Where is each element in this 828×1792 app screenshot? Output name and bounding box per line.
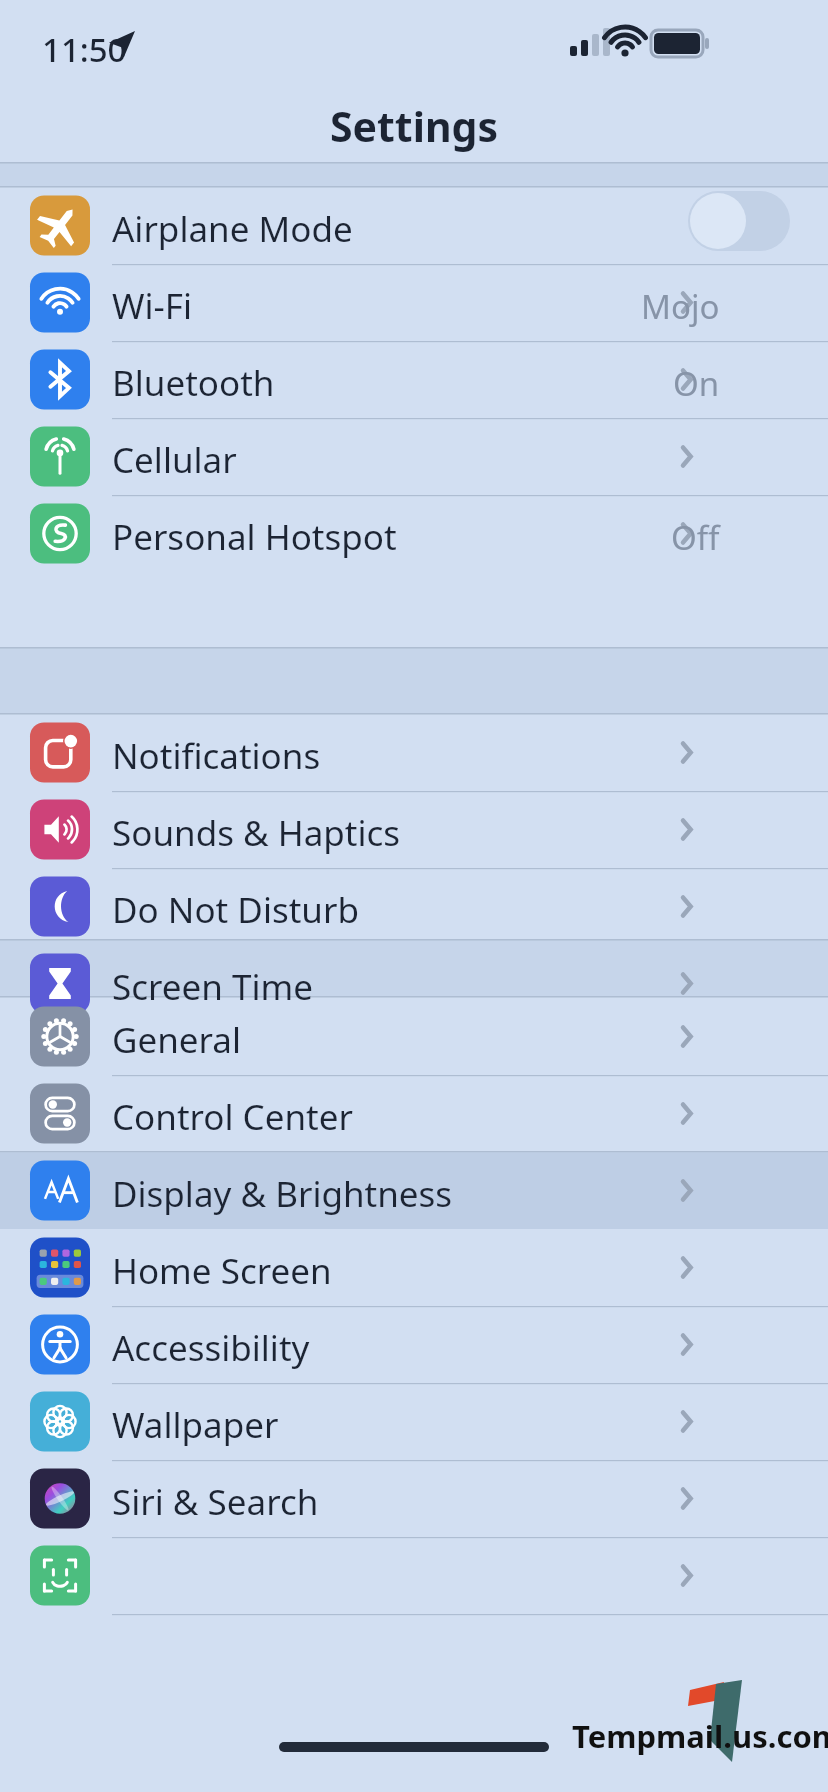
button[interactable]: Display & Brightness bbox=[0, 1152, 828, 1229]
staticText: Bluetooth bbox=[112, 359, 275, 407]
button[interactable]: Cellular bbox=[0, 418, 828, 495]
staticText: Control Center bbox=[112, 1093, 353, 1141]
staticText: Settings bbox=[0, 98, 828, 154]
button[interactable]: Do Not Disturb bbox=[0, 868, 828, 945]
button[interactable]: Siri & Search bbox=[0, 1460, 828, 1537]
button[interactable]: Notifications bbox=[0, 714, 828, 791]
staticText: Sounds & Haptics bbox=[112, 809, 401, 857]
staticText: General bbox=[112, 1016, 242, 1064]
button[interactable]: Bluetooth bbox=[0, 341, 828, 418]
staticText: Home Screen bbox=[112, 1247, 332, 1295]
button[interactable]: General bbox=[0, 998, 828, 1075]
button[interactable]: Control Center bbox=[0, 1075, 828, 1152]
staticText: Notifications bbox=[112, 732, 321, 780]
staticText: Personal Hotspot bbox=[112, 513, 397, 561]
staticText: Off bbox=[671, 515, 720, 560]
staticText: Wi-Fi bbox=[112, 282, 193, 330]
staticText: Do Not Disturb bbox=[112, 886, 359, 934]
button[interactable]: Wallpaper bbox=[0, 1383, 828, 1460]
staticText: Tempmail.us.com bbox=[572, 1715, 828, 1757]
staticText: On bbox=[673, 361, 720, 406]
button[interactable]: Accessibility bbox=[0, 1306, 828, 1383]
button[interactable]: Home Screen bbox=[0, 1229, 828, 1306]
staticText: Siri & Search bbox=[112, 1478, 319, 1526]
button[interactable]: Screen Time bbox=[0, 945, 828, 1022]
button[interactable]: Personal Hotspot bbox=[0, 495, 828, 572]
staticText: Display & Brightness bbox=[112, 1170, 453, 1218]
staticText: Cellular bbox=[112, 436, 237, 484]
button[interactable]: Airplane Mode bbox=[0, 187, 828, 264]
staticText: Wallpaper bbox=[112, 1401, 279, 1449]
button[interactable]: Wi-Fi bbox=[0, 264, 828, 341]
staticText: Mojo bbox=[641, 284, 720, 329]
staticText: Airplane Mode bbox=[112, 205, 353, 253]
staticText: 11:50 bbox=[42, 27, 127, 72]
button[interactable]: Sounds & Haptics bbox=[0, 791, 828, 868]
staticText: Screen Time bbox=[112, 963, 313, 1011]
staticText: Accessibility bbox=[112, 1324, 310, 1372]
